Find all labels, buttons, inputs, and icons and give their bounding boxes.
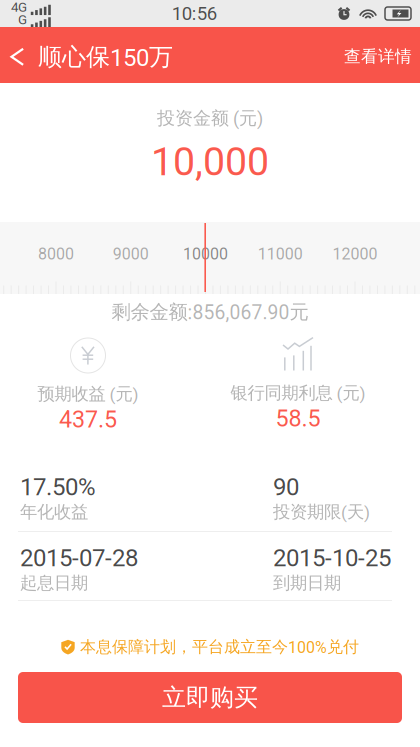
staticText: 剩余金额:856,067.90元 bbox=[111, 300, 308, 324]
button[interactable]: Back bbox=[0, 27, 38, 83]
staticText: 8000 bbox=[38, 245, 74, 263]
staticText: 本息保障计划，平台成立至今100%兑付 bbox=[80, 637, 359, 657]
staticText: 2015-07-28 bbox=[20, 544, 138, 572]
staticText: 立即购买 bbox=[162, 682, 258, 713]
staticText: 投资金额 (元) bbox=[157, 107, 263, 130]
staticText: 银行同期利息 (元) bbox=[230, 382, 365, 404]
staticText: 顺心保150万 bbox=[38, 42, 173, 72]
button[interactable]: 查看详情 bbox=[344, 27, 420, 83]
staticText: 预期收益 (元) bbox=[37, 383, 138, 405]
staticText: 17.50% bbox=[20, 473, 96, 501]
staticText: 4G bbox=[11, 0, 27, 15]
staticText: 年化收益 bbox=[20, 501, 88, 523]
staticText: 10:56 bbox=[172, 3, 217, 24]
staticText: 10000 bbox=[183, 245, 228, 263]
staticText: G bbox=[18, 12, 27, 27]
staticText: 437.5 bbox=[59, 406, 117, 433]
staticText: 查看详情 bbox=[344, 46, 412, 67]
staticText: 11000 bbox=[258, 245, 303, 263]
staticText: 9000 bbox=[113, 245, 149, 263]
staticText: 12000 bbox=[332, 245, 377, 263]
staticText: 10,000 bbox=[151, 139, 269, 185]
staticText: 到期日期 bbox=[273, 572, 341, 594]
staticText: 起息日期 bbox=[20, 572, 88, 594]
staticText: 投资期限(天) bbox=[273, 501, 370, 523]
staticText: 58.5 bbox=[275, 405, 320, 432]
staticText: 90 bbox=[273, 473, 299, 501]
button[interactable]: 立即购买 bbox=[18, 672, 402, 723]
staticText: 2015-10-25 bbox=[273, 544, 391, 572]
